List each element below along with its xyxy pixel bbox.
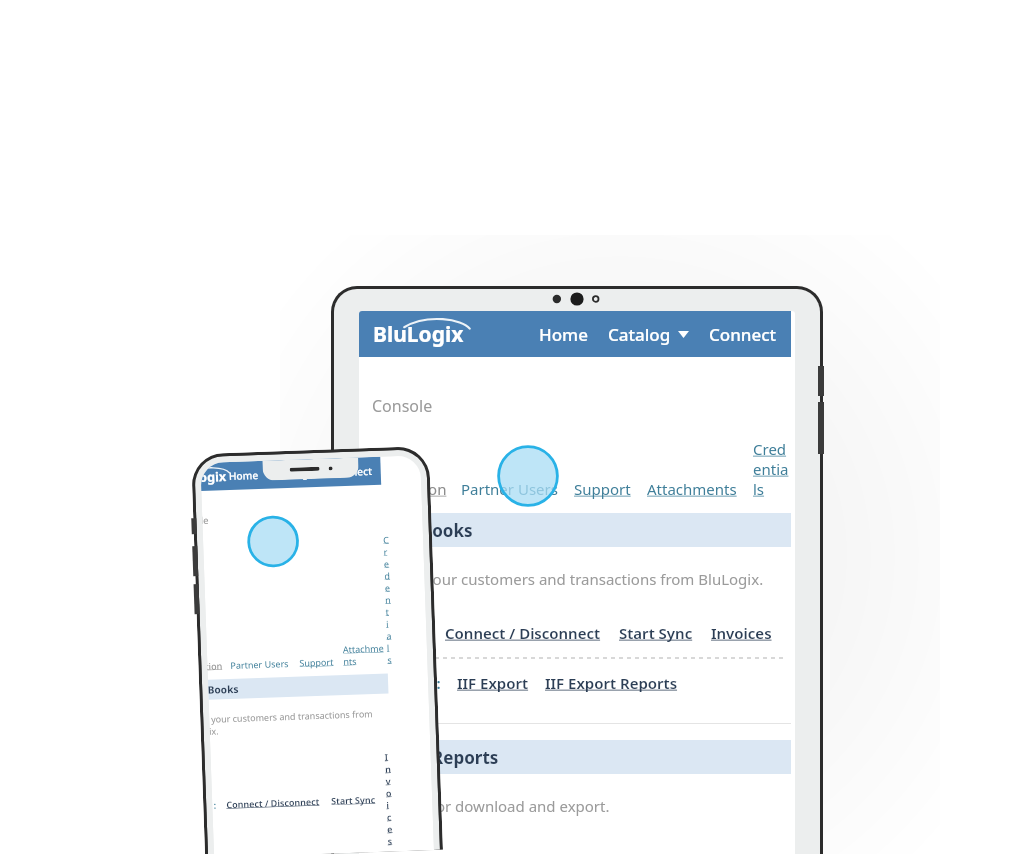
staticText: Integration	[367, 479, 447, 499]
staticText: Connect	[331, 464, 373, 479]
button[interactable]: Home	[229, 468, 259, 483]
staticText: Console	[372, 395, 433, 417]
staticText: Integration	[207, 659, 223, 672]
button[interactable]: IIF Export	[457, 673, 529, 693]
staticText: Invoices	[711, 623, 772, 643]
button[interactable]: Invoices	[384, 750, 394, 847]
staticText: Attachments	[343, 642, 387, 667]
button[interactable]: Support	[574, 477, 631, 501]
staticText: Invoices	[384, 750, 394, 847]
button[interactable]: BluLogix home	[373, 317, 477, 351]
staticText: Online :	[212, 799, 216, 811]
button[interactable]: Support	[299, 654, 334, 670]
staticText: IIF Export	[457, 673, 529, 693]
button[interactable]: Catalog	[270, 466, 320, 481]
staticText: Partner Users	[461, 479, 558, 499]
button[interactable]: Partner Users	[230, 656, 290, 672]
button[interactable]: Connect / Disconnect	[226, 795, 320, 810]
button[interactable]: Invoices	[711, 623, 772, 643]
staticText: Attachments	[647, 479, 737, 499]
button[interactable]: Attachments	[647, 477, 737, 501]
button[interactable]: Integration	[207, 658, 223, 673]
staticText: Support	[299, 655, 334, 669]
staticText: Start Sync	[619, 623, 693, 643]
button[interactable]: Connect / Disconnect	[445, 623, 601, 643]
staticText: Catalog	[270, 466, 309, 481]
staticText: Partner Users	[230, 657, 290, 671]
button[interactable]: Tap indicator	[497, 445, 559, 507]
staticText: Connect	[709, 323, 777, 346]
button[interactable]: Attachments	[343, 641, 388, 668]
staticText: Import your customers and transactions f…	[209, 706, 390, 737]
button[interactable]: Credentials	[753, 437, 791, 501]
staticText: Start Sync	[331, 793, 375, 807]
button[interactable]: Tap indicator	[246, 515, 300, 568]
staticText: Reports for download and export.	[372, 796, 610, 816]
staticText: BluLogix	[373, 320, 464, 349]
staticText: IIF Export Reports	[545, 673, 678, 693]
button[interactable]: Start Sync	[331, 793, 375, 807]
staticText: Catalog	[608, 323, 671, 346]
staticText: BluLogix	[200, 468, 227, 486]
staticText: Online :	[372, 623, 429, 643]
staticText: QuickBooks	[208, 682, 239, 697]
staticText: Console	[202, 514, 209, 527]
staticText: Export Reports	[372, 746, 499, 769]
button[interactable]: IIF Export Reports	[545, 673, 678, 693]
button[interactable]: Integration	[367, 477, 447, 501]
staticText: Desktop :	[372, 673, 441, 693]
staticText: Home	[229, 468, 259, 483]
button[interactable]: Home	[539, 323, 588, 346]
staticText: Support	[574, 479, 631, 499]
staticText: Import your customers and transactions f…	[372, 569, 764, 589]
staticText: Connect / Disconnect	[445, 623, 601, 643]
staticText: QuickBooks	[372, 519, 473, 542]
button[interactable]: Start Sync	[619, 623, 693, 643]
button[interactable]: Connect	[709, 323, 777, 346]
button[interactable]: Connect	[331, 464, 373, 479]
staticText: Home	[539, 323, 588, 346]
staticText: Connect / Disconnect	[226, 795, 320, 810]
button[interactable]: Partner Users	[461, 477, 558, 501]
button[interactable]: Catalog	[608, 323, 689, 346]
button[interactable]: BluLogix home	[200, 466, 234, 487]
staticText: Credentials	[753, 439, 791, 499]
